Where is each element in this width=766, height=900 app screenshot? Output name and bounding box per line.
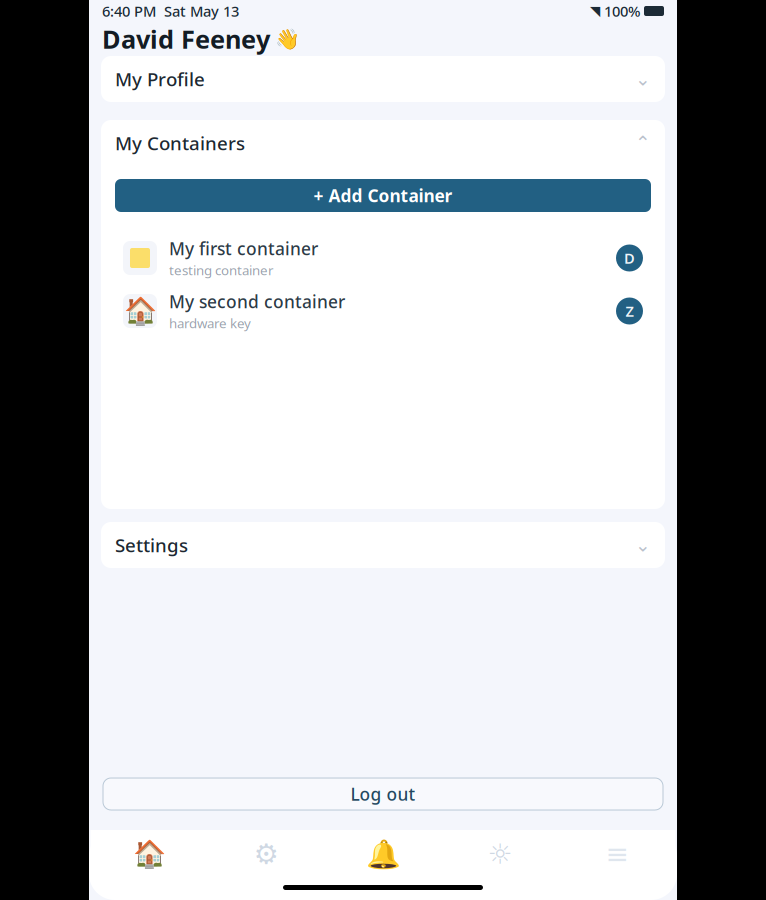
button[interactable]: Notifications [324,830,441,878]
button[interactable]: Devices [207,830,324,878]
staticText: D [624,248,635,268]
staticText: Settings [115,533,188,557]
staticText: David Feeney [102,22,270,56]
staticText: My Profile [115,67,205,91]
staticText: My Containers [115,131,245,155]
staticText: 🏠 [132,839,165,869]
staticText: 6:40 PM [102,1,156,21]
button[interactable]: My Profile [101,56,665,102]
staticText: 100% [604,1,640,21]
button[interactable]: Settings [441,830,558,878]
staticText: ◥ [590,3,600,18]
staticText: ☼ [487,838,512,870]
staticText: My first container [169,237,318,260]
staticText: Z [625,301,633,321]
staticText: My second container [169,290,345,313]
staticText: ⌃ [635,132,651,154]
button[interactable]: Settings [101,522,665,568]
staticText: ⚙ [253,838,278,870]
staticText: ⌄ [635,68,651,90]
staticText: ⌄ [635,534,651,556]
staticText: hardware key [169,314,251,332]
staticText: Sat May 13 [164,1,239,21]
staticText: 👋 [275,28,300,50]
button[interactable]: Menu [558,830,675,878]
staticText: testing container [169,261,274,279]
staticText: Log out [350,782,415,805]
button[interactable]: + Add Container [115,179,651,212]
button[interactable]: Log out [103,778,663,810]
staticText: + Add Container [313,184,452,207]
staticText: ≡ [605,838,628,870]
button[interactable]: 🏠 [101,290,665,332]
button[interactable]: Home [90,830,207,878]
staticText: 🔔 [365,838,400,870]
button[interactable]: My first container [101,237,665,279]
staticText: 🏠 [123,296,156,326]
button[interactable]: My Containers [101,120,665,166]
